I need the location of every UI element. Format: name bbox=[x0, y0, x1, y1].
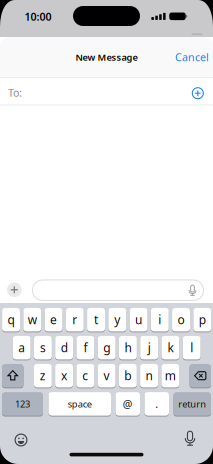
button[interactable]: h bbox=[119, 335, 137, 360]
staticText: h bbox=[124, 340, 131, 356]
staticText: i bbox=[158, 312, 161, 328]
button[interactable]: w bbox=[23, 307, 41, 332]
staticText: @ bbox=[123, 397, 133, 411]
button[interactable]: Message input bbox=[32, 279, 204, 301]
button[interactable]: Add Contact bbox=[191, 86, 205, 100]
button[interactable]: Delete bbox=[189, 363, 211, 388]
button[interactable]: Emoji bbox=[13, 432, 29, 448]
staticText: f bbox=[83, 340, 87, 356]
staticText: 123 bbox=[15, 398, 30, 410]
button[interactable]: 123 bbox=[2, 391, 43, 417]
button[interactable]: j bbox=[140, 335, 158, 360]
button[interactable]: x bbox=[55, 363, 73, 388]
button[interactable]: Shift bbox=[2, 363, 23, 388]
button[interactable]: @ bbox=[115, 391, 140, 417]
button[interactable]: v bbox=[98, 363, 115, 388]
button[interactable]: r bbox=[66, 307, 84, 332]
button[interactable]: g bbox=[98, 335, 116, 360]
button[interactable]: Cancel bbox=[175, 50, 209, 64]
button[interactable]: s bbox=[34, 335, 52, 360]
button[interactable]: u bbox=[130, 307, 147, 332]
staticText: t bbox=[94, 312, 98, 328]
staticText: e bbox=[50, 312, 57, 328]
staticText: 10:00 bbox=[24, 9, 51, 24]
button[interactable]: space bbox=[48, 391, 111, 417]
button[interactable]: o bbox=[172, 307, 190, 332]
button[interactable]: k bbox=[161, 335, 179, 360]
staticText: New Message bbox=[75, 51, 137, 63]
button[interactable]: q bbox=[2, 307, 20, 332]
staticText: c bbox=[82, 368, 88, 384]
button[interactable]: m bbox=[161, 363, 179, 388]
button[interactable]: t bbox=[87, 307, 105, 332]
staticText: g bbox=[103, 340, 110, 356]
staticText: d bbox=[61, 340, 68, 356]
staticText: q bbox=[7, 312, 14, 328]
staticText: y bbox=[114, 312, 120, 328]
staticText: u bbox=[135, 312, 142, 328]
staticText: x bbox=[61, 368, 67, 384]
button[interactable]: b bbox=[119, 363, 137, 388]
staticText: r bbox=[72, 312, 77, 328]
staticText: k bbox=[167, 340, 173, 356]
staticText: Cancel bbox=[175, 50, 209, 64]
staticText: n bbox=[146, 368, 153, 384]
staticText: s bbox=[40, 340, 46, 356]
staticText: p bbox=[199, 312, 206, 328]
button[interactable]: a bbox=[13, 335, 31, 360]
button[interactable]: i bbox=[151, 307, 169, 332]
button[interactable]: z bbox=[34, 363, 52, 388]
staticText: o bbox=[178, 312, 185, 328]
staticText: . bbox=[155, 397, 158, 411]
staticText: l bbox=[190, 340, 193, 356]
button[interactable]: return bbox=[173, 391, 211, 417]
button[interactable]: e bbox=[45, 307, 62, 332]
staticText: j bbox=[148, 340, 151, 356]
button[interactable]: . bbox=[144, 391, 169, 417]
staticText: w bbox=[28, 312, 37, 328]
button[interactable]: y bbox=[108, 307, 126, 332]
button[interactable]: f bbox=[76, 335, 94, 360]
staticText: z bbox=[40, 368, 46, 384]
button[interactable]: d bbox=[55, 335, 73, 360]
button[interactable]: Dictation bbox=[181, 429, 199, 448]
staticText: b bbox=[124, 368, 131, 384]
button[interactable]: p bbox=[193, 307, 211, 332]
button[interactable]: l bbox=[183, 335, 201, 360]
staticText: a bbox=[18, 340, 25, 356]
staticText: space bbox=[68, 398, 92, 410]
button[interactable]: Apps bbox=[7, 282, 22, 297]
staticText: return bbox=[178, 398, 206, 410]
staticText: m bbox=[165, 368, 176, 384]
staticText: To: bbox=[8, 86, 22, 100]
button[interactable]: c bbox=[76, 363, 94, 388]
staticText: v bbox=[104, 368, 110, 384]
button[interactable]: n bbox=[140, 363, 158, 388]
